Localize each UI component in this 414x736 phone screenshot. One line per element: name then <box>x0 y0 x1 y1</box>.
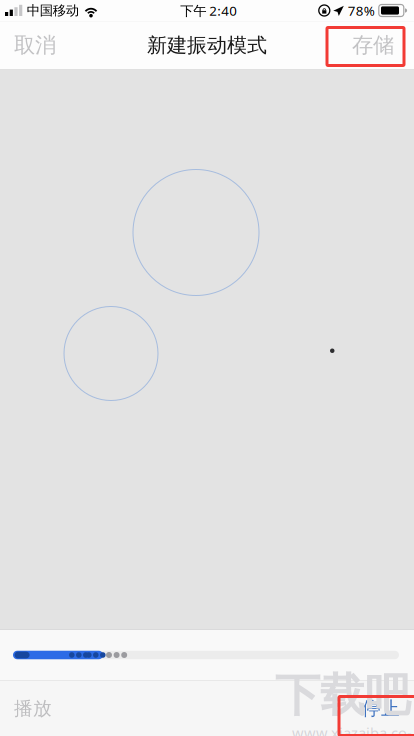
staticText: 停止 <box>362 697 400 720</box>
staticText: 78% <box>348 2 375 19</box>
button[interactable]: 播放 <box>0 681 66 735</box>
button[interactable]: 停止 <box>348 681 414 735</box>
staticText: 中国移动 <box>27 2 79 19</box>
staticText: 下载吧 <box>275 667 410 723</box>
button[interactable]: 存储 <box>338 21 414 69</box>
button[interactable]: 取消 <box>0 21 70 69</box>
staticText: 下午 2:40 <box>180 2 237 19</box>
staticText: www.xiazaiba.com <box>292 723 412 736</box>
staticText: 取消 <box>14 32 56 58</box>
button[interactable]: 轻点以创建振动模式 <box>0 69 414 629</box>
staticText: 新建振动模式 <box>147 33 267 58</box>
staticText: 播放 <box>14 697 52 720</box>
staticText: 存储 <box>352 32 394 58</box>
